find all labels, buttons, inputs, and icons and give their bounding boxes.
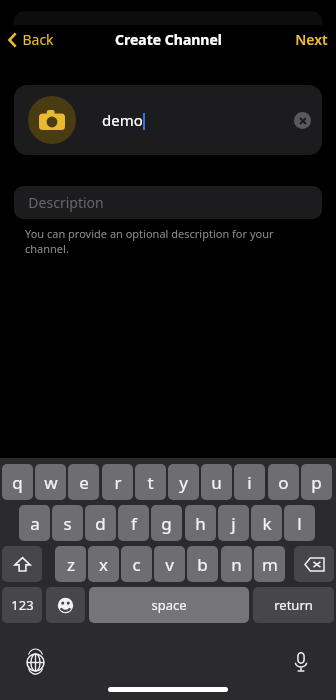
staticText: Description xyxy=(28,193,104,212)
button[interactable]: o xyxy=(268,464,299,500)
staticText: l xyxy=(297,512,302,535)
button[interactable]: l xyxy=(284,505,315,541)
staticText: demo xyxy=(102,110,143,130)
staticText: Create Channel xyxy=(115,30,222,49)
button[interactable]: p xyxy=(301,464,332,500)
staticText: j xyxy=(231,512,236,535)
button[interactable]: g xyxy=(151,505,182,541)
staticText: d xyxy=(95,512,106,535)
button[interactable]: Change keyboard language xyxy=(20,647,50,677)
staticText: Next xyxy=(295,30,328,49)
staticText: return xyxy=(274,596,313,614)
button[interactable]: u xyxy=(201,464,232,500)
staticText: z xyxy=(67,553,75,576)
staticText: h xyxy=(195,512,206,535)
button[interactable]: k xyxy=(251,505,282,541)
staticText: u xyxy=(211,471,222,494)
button[interactable]: t xyxy=(135,464,166,500)
staticText: q xyxy=(12,471,23,494)
staticText: t xyxy=(147,471,154,494)
button[interactable]: r xyxy=(102,464,133,500)
staticText: i xyxy=(247,471,252,494)
button[interactable]: e xyxy=(68,464,99,500)
button[interactable]: h xyxy=(185,505,216,541)
staticText: e xyxy=(79,471,89,494)
button[interactable]: Emoji xyxy=(46,587,85,623)
staticText: b xyxy=(197,553,208,576)
staticText: m xyxy=(262,553,278,576)
button[interactable]: y xyxy=(168,464,199,500)
button[interactable]: i xyxy=(234,464,265,500)
staticText: You can provide an optional description … xyxy=(25,226,285,256)
button[interactable]: Description xyxy=(14,186,322,219)
staticText: v xyxy=(165,553,174,576)
button[interactable]: 123 xyxy=(2,587,42,623)
button[interactable]: j xyxy=(218,505,249,541)
button[interactable]: Backspace xyxy=(294,546,334,582)
staticText: y xyxy=(179,471,188,494)
button[interactable]: b xyxy=(187,546,218,582)
button[interactable]: f xyxy=(118,505,149,541)
button[interactable]: v xyxy=(154,546,185,582)
button[interactable]: z xyxy=(55,546,86,582)
staticText: g xyxy=(161,512,172,535)
button[interactable]: Shift xyxy=(2,546,42,582)
button[interactable]: d xyxy=(85,505,116,541)
staticText: r xyxy=(114,471,122,494)
button[interactable]: space xyxy=(89,587,249,623)
staticText: p xyxy=(311,471,322,494)
button[interactable]: Back xyxy=(0,27,62,52)
button[interactable]: n xyxy=(221,546,252,582)
button[interactable]: x xyxy=(88,546,119,582)
staticText: k xyxy=(262,512,272,535)
button[interactable]: Clear text xyxy=(294,112,311,129)
staticText: x xyxy=(99,553,108,576)
staticText: f xyxy=(131,512,137,535)
staticText: space xyxy=(151,596,187,614)
staticText: w xyxy=(44,471,58,494)
button[interactable]: q xyxy=(2,464,33,500)
staticText: a xyxy=(30,512,40,535)
button[interactable]: a xyxy=(19,505,50,541)
staticText: 123 xyxy=(11,596,34,614)
button[interactable]: return xyxy=(253,587,334,623)
staticText: c xyxy=(132,553,141,576)
button[interactable]: Next xyxy=(287,27,336,52)
button[interactable]: m xyxy=(254,546,285,582)
staticText: Back xyxy=(22,30,54,49)
button[interactable]: Choose channel photo xyxy=(28,96,76,144)
staticText: s xyxy=(63,512,72,535)
button[interactable]: c xyxy=(121,546,152,582)
staticText: o xyxy=(278,471,289,494)
staticText: n xyxy=(231,553,242,576)
button[interactable]: s xyxy=(52,505,83,541)
button[interactable]: w xyxy=(35,464,66,500)
button[interactable]: Dictation xyxy=(286,647,316,677)
